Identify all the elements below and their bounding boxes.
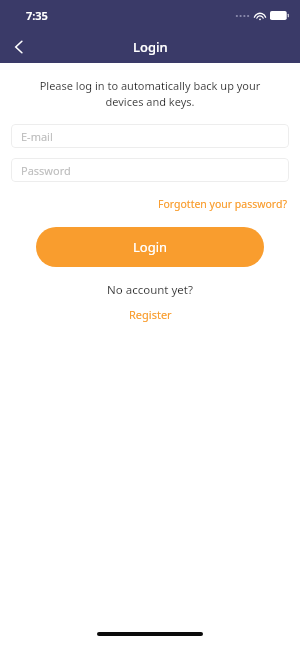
staticText: Login [133,238,168,256]
button[interactable]: Password [11,158,289,182]
staticText: Password [21,163,71,178]
staticText: Login [133,38,168,56]
button[interactable]: Register [123,305,178,324]
button[interactable]: Forgotten your password? [156,195,289,213]
staticText: 7:35 [26,8,48,23]
staticText: Register [129,307,172,322]
staticText: Forgotten your password? [158,197,287,211]
button[interactable]: Back [0,30,38,63]
button[interactable]: Login [36,227,264,267]
button[interactable]: E-mail [11,124,289,148]
staticText: E-mail [21,129,53,144]
staticText: Please log in to automatically back up y… [24,78,276,109]
staticText: No account yet? [0,282,300,298]
